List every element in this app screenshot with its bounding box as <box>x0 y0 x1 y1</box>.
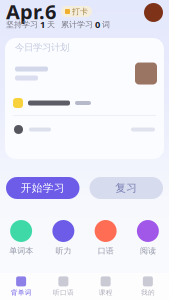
button[interactable]: 复习 <box>89 177 163 199</box>
button[interactable]: 课程 <box>84 276 127 297</box>
staticText: 打卡 <box>72 7 88 16</box>
staticText: 今日学习计划 <box>15 42 69 53</box>
staticText: 口语 <box>98 246 114 256</box>
button[interactable]: 单词本 <box>0 220 42 256</box>
staticText: 天 <box>45 20 55 29</box>
staticText: 词 <box>100 20 110 29</box>
staticText: 开始学习 <box>21 181 65 194</box>
button[interactable]: 打卡 <box>61 6 92 17</box>
staticText: 听力 <box>55 246 71 256</box>
button[interactable]: Profile <box>144 3 163 22</box>
button[interactable]: 开始学习 <box>6 177 79 199</box>
button[interactable]: 背单词 <box>0 276 42 297</box>
staticText: 0 <box>95 18 100 31</box>
staticText: 累计学习 <box>55 20 95 29</box>
staticText: 我的 <box>141 288 155 297</box>
button[interactable]: 阅读 <box>127 220 169 256</box>
staticText: 背单词 <box>11 288 32 297</box>
button[interactable]: 听口语 <box>42 276 84 297</box>
staticText: Apr.6 <box>6 0 56 25</box>
staticText: 听口语 <box>53 288 74 297</box>
staticText: 课程 <box>99 288 113 297</box>
staticText: 阅读 <box>140 246 156 256</box>
staticText: 复习 <box>115 181 137 194</box>
button[interactable]: 我的 <box>127 276 169 297</box>
staticText: 坚持学习 <box>6 20 40 29</box>
button[interactable]: 口语 <box>84 220 127 256</box>
staticText: 1 <box>40 18 45 31</box>
staticText: 单词本 <box>9 246 33 256</box>
button[interactable]: 听力 <box>42 220 84 256</box>
